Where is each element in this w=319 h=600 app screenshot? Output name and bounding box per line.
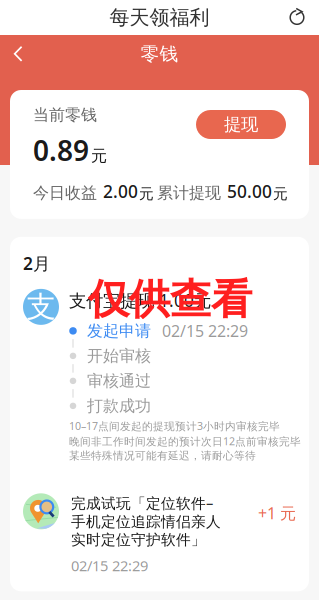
staticText: 0.89 (33, 132, 89, 169)
staticText: 零钱 (140, 42, 178, 65)
staticText: 2.00 (103, 180, 138, 203)
staticText: 02/15 22:29 (162, 320, 248, 341)
staticText: 某些特殊情况可能有延迟，请耐心等待 (69, 449, 256, 462)
staticText: 支付宝提现 1.00元 (69, 289, 211, 312)
staticText: 发起申请 (87, 321, 151, 341)
staticText: 02/15 22:29 (71, 556, 148, 575)
staticText: 审核通过 (87, 371, 151, 391)
staticText: 当前零钱 (33, 105, 97, 125)
staticText: 元 (91, 146, 107, 166)
staticText: 晚间非工作时间发起的预计次日12点前审核完毕 (69, 434, 301, 448)
staticText: 提现 (224, 114, 258, 135)
staticText: 仅供查看 (88, 274, 252, 325)
button[interactable]: 提现 (196, 110, 286, 139)
staticText: 开始审核 (87, 346, 151, 366)
staticText: 打款成功 (87, 396, 151, 416)
staticText: 累计提现 (157, 183, 221, 203)
button[interactable]: Back (0, 38, 35, 69)
staticText: 完成试玩「定位软件–手机定位追踪情侣亲人实时定位守护软件」 (71, 493, 221, 549)
button[interactable]: Refresh (276, 0, 319, 34)
staticText: 元 (273, 185, 288, 203)
staticText: 50.00 (227, 180, 272, 203)
staticText: 2月 (23, 252, 50, 275)
staticText: 元 (139, 185, 154, 203)
staticText: 今日收益 (33, 183, 97, 203)
staticText: 每天领福利 (109, 5, 209, 30)
staticText: 10–17点间发起的提现预计3小时内审核完毕 (69, 419, 280, 433)
staticText: 支 (26, 289, 55, 325)
staticText: +1 元 (258, 502, 296, 523)
